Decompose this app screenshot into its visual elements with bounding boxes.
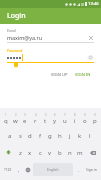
- button[interactable]: Password: [7, 48, 94, 68]
- button[interactable]: SIGN UP: [48, 70, 71, 80]
- staticText: English: [47, 167, 59, 172]
- button[interactable]: 4: [30, 110, 40, 127]
- button[interactable]: 6: [50, 110, 60, 127]
- staticText: m: [77, 149, 83, 157]
- staticText: Email: [7, 28, 16, 33]
- staticText: 6: [54, 113, 56, 117]
- staticText: p: [93, 117, 97, 125]
- button[interactable]: h: [55, 127, 65, 144]
- button[interactable]: b: [55, 144, 65, 161]
- button[interactable]: 7: [60, 110, 70, 127]
- button[interactable]: s: [15, 127, 25, 144]
- staticText: n: [68, 149, 72, 157]
- staticText: b: [58, 149, 62, 157]
- staticText: 7: [64, 113, 66, 117]
- button[interactable]: 3: [20, 110, 30, 127]
- staticText: h: [58, 132, 62, 140]
- staticText: maxim@ya.ru: [7, 34, 87, 41]
- button[interactable]: Email: [7, 28, 94, 43]
- staticText: e: [23, 117, 27, 125]
- button[interactable]: v: [45, 144, 55, 161]
- staticText: r: [34, 117, 37, 125]
- staticText: y: [53, 117, 57, 125]
- button[interactable]: 2: [10, 110, 20, 127]
- staticText: d: [28, 132, 32, 140]
- staticText: i: [74, 117, 76, 125]
- button[interactable]: f: [35, 127, 45, 144]
- staticText: f: [39, 132, 42, 140]
- staticText: t: [44, 117, 47, 125]
- button[interactable]: 9: [80, 110, 90, 127]
- button[interactable]: ?123: [1, 161, 14, 178]
- button[interactable]: 5: [40, 110, 50, 127]
- staticText: Login: [7, 11, 26, 21]
- staticText: s: [19, 132, 22, 140]
- staticText: 3: [24, 113, 26, 117]
- button[interactable]: 0: [90, 110, 100, 127]
- button[interactable]: n: [65, 144, 75, 161]
- button[interactable]: Backspace: [85, 144, 100, 161]
- button[interactable]: Sign in: [83, 161, 100, 178]
- staticText: SIGN IN: [75, 72, 91, 78]
- staticText: u: [63, 117, 67, 125]
- staticText: .: [78, 167, 80, 173]
- button[interactable]: 8: [70, 110, 80, 127]
- staticText: 8: [74, 113, 76, 117]
- staticText: 1: [5, 113, 7, 117]
- staticText: a: [8, 132, 12, 140]
- staticText: 9: [84, 113, 86, 117]
- staticText: Password: [7, 48, 23, 53]
- staticText: Sign in: [86, 167, 97, 172]
- button[interactable]: m: [75, 144, 85, 161]
- button[interactable]: 1: [1, 110, 10, 127]
- staticText: o: [83, 117, 87, 125]
- button[interactable]: d: [25, 127, 35, 144]
- button[interactable]: Show password: [86, 54, 94, 61]
- staticText: c: [39, 149, 42, 157]
- staticText: ?123: [4, 167, 12, 172]
- staticText: g: [48, 132, 52, 140]
- button[interactable]: Clear email: [87, 34, 94, 41]
- button[interactable]: English: [33, 163, 73, 176]
- button[interactable]: x: [25, 144, 35, 161]
- button[interactable]: Shift: [1, 144, 15, 161]
- button[interactable]: k: [75, 127, 85, 144]
- staticText: x: [28, 149, 32, 157]
- staticText: 0: [94, 113, 96, 117]
- staticText: j: [69, 132, 71, 140]
- button[interactable]: z: [15, 144, 25, 161]
- staticText: SIGN UP: [51, 72, 68, 78]
- staticText: 2: [15, 113, 17, 117]
- button[interactable]: l: [85, 127, 95, 144]
- button[interactable]: Change language: [23, 161, 32, 178]
- staticText: w: [13, 117, 18, 125]
- staticText: ,: [18, 167, 20, 173]
- staticText: 4: [35, 113, 37, 117]
- staticText: q: [4, 117, 8, 125]
- button[interactable]: a: [5, 127, 15, 144]
- button[interactable]: .: [74, 161, 83, 178]
- staticText: v: [48, 149, 52, 157]
- button[interactable]: g: [45, 127, 55, 144]
- staticText: z: [19, 149, 22, 157]
- button[interactable]: j: [65, 127, 75, 144]
- staticText: l: [89, 132, 91, 140]
- staticText: 5: [45, 113, 47, 117]
- button[interactable]: ,: [14, 161, 23, 178]
- staticText: 13:46: [88, 1, 99, 7]
- staticText: k: [78, 132, 82, 140]
- button[interactable]: SIGN IN: [72, 70, 94, 80]
- button[interactable]: c: [35, 144, 45, 161]
